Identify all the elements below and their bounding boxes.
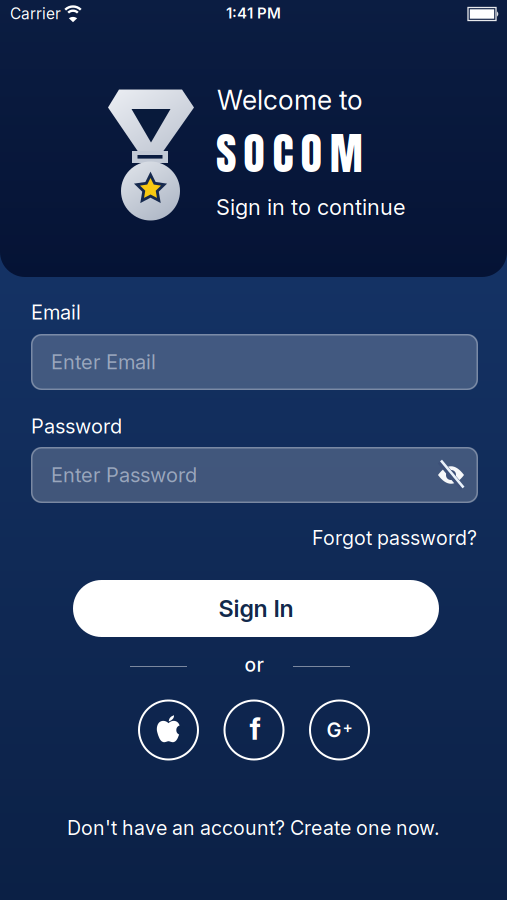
button[interactable]: Forgot password?	[312, 526, 477, 550]
staticText: Don't have an account? Create one now.	[67, 816, 440, 840]
staticText: Sign In	[218, 594, 293, 623]
button[interactable]: Show password	[438, 463, 464, 487]
button[interactable]: Don't have an account? Create one now.	[67, 816, 440, 840]
button[interactable]: Sign In	[73, 580, 439, 637]
staticText: C	[272, 120, 293, 187]
staticText: S	[216, 120, 236, 187]
staticText: M	[330, 120, 363, 187]
button[interactable]: Enter Password	[31, 447, 478, 503]
button[interactable]: Enter Email	[31, 334, 478, 390]
staticText: Forgot password?	[312, 526, 477, 550]
staticText: Password	[31, 414, 122, 438]
staticText: Enter Password	[51, 463, 197, 487]
staticText: O	[301, 120, 323, 187]
staticText: +	[342, 718, 352, 736]
staticText: Enter Email	[51, 350, 156, 374]
staticText: Welcome to	[217, 84, 363, 116]
staticText: O	[243, 120, 265, 187]
staticText: or	[244, 653, 263, 676]
staticText: 1:41 PM	[226, 4, 281, 22]
staticText: Carrier	[10, 4, 61, 23]
button[interactable]: Sign in with Apple	[138, 699, 199, 760]
staticText: Sign in to continue	[216, 194, 406, 220]
staticText: f	[249, 711, 260, 747]
staticText: Email	[31, 300, 81, 324]
button[interactable]: Sign in with Facebook	[223, 699, 284, 760]
staticText: G	[326, 718, 341, 742]
button[interactable]: Sign in with Google	[309, 699, 370, 760]
